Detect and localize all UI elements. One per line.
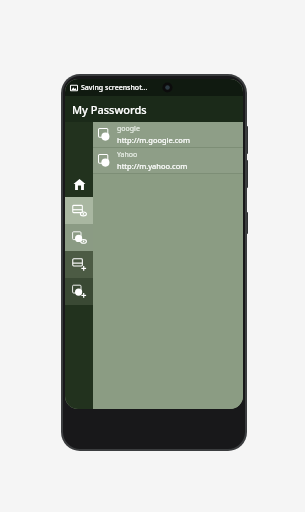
button[interactable]: Show saved passwords [65,197,93,224]
staticText: Saving screenshot… [81,83,148,93]
button[interactable]: Add new web login [65,278,93,305]
staticText: Yahoo [117,150,138,160]
button[interactable]: Home [65,172,93,197]
button[interactable]: Show saved web logins [65,224,93,251]
button[interactable]: Yahoo [93,148,243,173]
button[interactable]: My Passwords [65,96,243,122]
staticText: http://m.google.com [117,135,190,145]
staticText: google [117,124,140,134]
button[interactable]: google [93,122,243,147]
button[interactable]: Add new password [65,251,93,278]
staticText: My Passwords [72,102,147,117]
staticText: http://m.yahoo.com [117,161,188,171]
